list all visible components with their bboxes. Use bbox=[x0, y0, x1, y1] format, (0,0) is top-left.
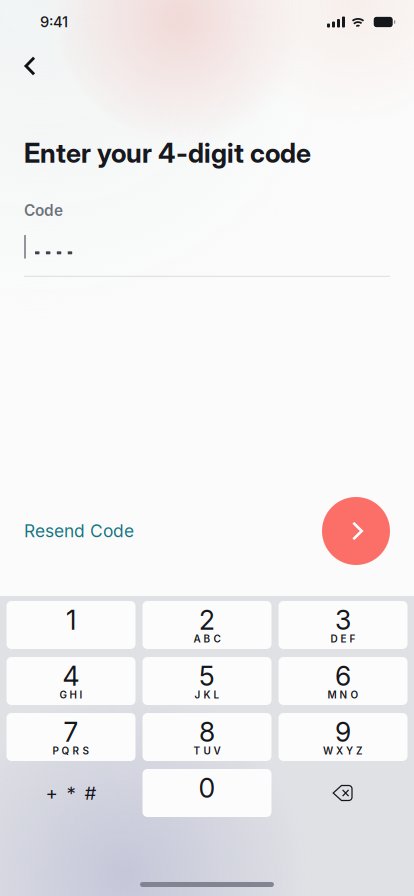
button[interactable]: 9 bbox=[278, 713, 407, 761]
button[interactable]: 6 bbox=[278, 657, 407, 705]
staticText: A B C bbox=[193, 633, 220, 645]
button[interactable]: Resend Code bbox=[24, 520, 134, 541]
staticText: 1 bbox=[66, 604, 76, 636]
button[interactable]: 0 bbox=[142, 769, 271, 817]
staticText: T U V bbox=[193, 745, 220, 757]
button[interactable]: 8 bbox=[142, 713, 271, 761]
button[interactable]: Delete bbox=[278, 769, 407, 817]
staticText: + * # bbox=[45, 782, 96, 804]
button[interactable]: 7 bbox=[6, 713, 135, 761]
button[interactable]: Continue bbox=[322, 497, 390, 565]
staticText: 9 bbox=[335, 716, 351, 748]
button[interactable]: Symbols bbox=[6, 769, 135, 817]
button[interactable]: 1 bbox=[6, 601, 135, 649]
staticText: 8 bbox=[199, 716, 215, 748]
button[interactable]: 5 bbox=[142, 657, 271, 705]
staticText: 0 bbox=[198, 772, 215, 804]
staticText: 2 bbox=[199, 604, 215, 636]
button[interactable]: 2 bbox=[142, 601, 271, 649]
staticText: Resend Code bbox=[24, 520, 134, 541]
staticText: M N O bbox=[327, 689, 358, 701]
staticText: 3 bbox=[335, 604, 351, 636]
staticText: J K L bbox=[194, 689, 219, 701]
button[interactable]: Back bbox=[8, 44, 52, 88]
staticText: D E F bbox=[330, 633, 355, 645]
staticText: W X Y Z bbox=[323, 745, 363, 757]
staticText: 6 bbox=[335, 660, 351, 692]
staticText: G H I bbox=[59, 689, 82, 701]
staticText: 9:41 bbox=[40, 13, 68, 31]
button[interactable]: 3 bbox=[278, 601, 407, 649]
staticText: Enter your 4-digit code bbox=[24, 137, 311, 169]
staticText: 5 bbox=[199, 660, 215, 692]
button[interactable]: 4 bbox=[6, 657, 135, 705]
staticText: P Q R S bbox=[52, 745, 89, 757]
staticText: 4 bbox=[62, 660, 79, 692]
staticText: 7 bbox=[63, 716, 78, 748]
staticText: Code bbox=[24, 201, 63, 220]
